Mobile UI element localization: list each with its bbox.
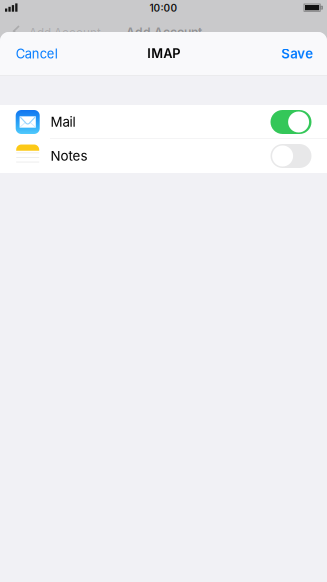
button[interactable]: Cancel xyxy=(16,45,86,62)
staticText: Save xyxy=(281,46,313,62)
staticText: Notes xyxy=(50,148,87,164)
staticText: Add Account xyxy=(29,26,101,40)
staticText: 10:00 xyxy=(149,2,177,14)
staticText: Mail xyxy=(50,114,75,130)
button[interactable]: Notes xyxy=(0,139,327,173)
staticText: Cancel xyxy=(16,46,58,61)
button[interactable]: Mail xyxy=(0,105,327,139)
button[interactable]: Save xyxy=(253,45,313,62)
staticText: Add Account xyxy=(126,25,202,39)
staticText: IMAP xyxy=(147,46,180,61)
